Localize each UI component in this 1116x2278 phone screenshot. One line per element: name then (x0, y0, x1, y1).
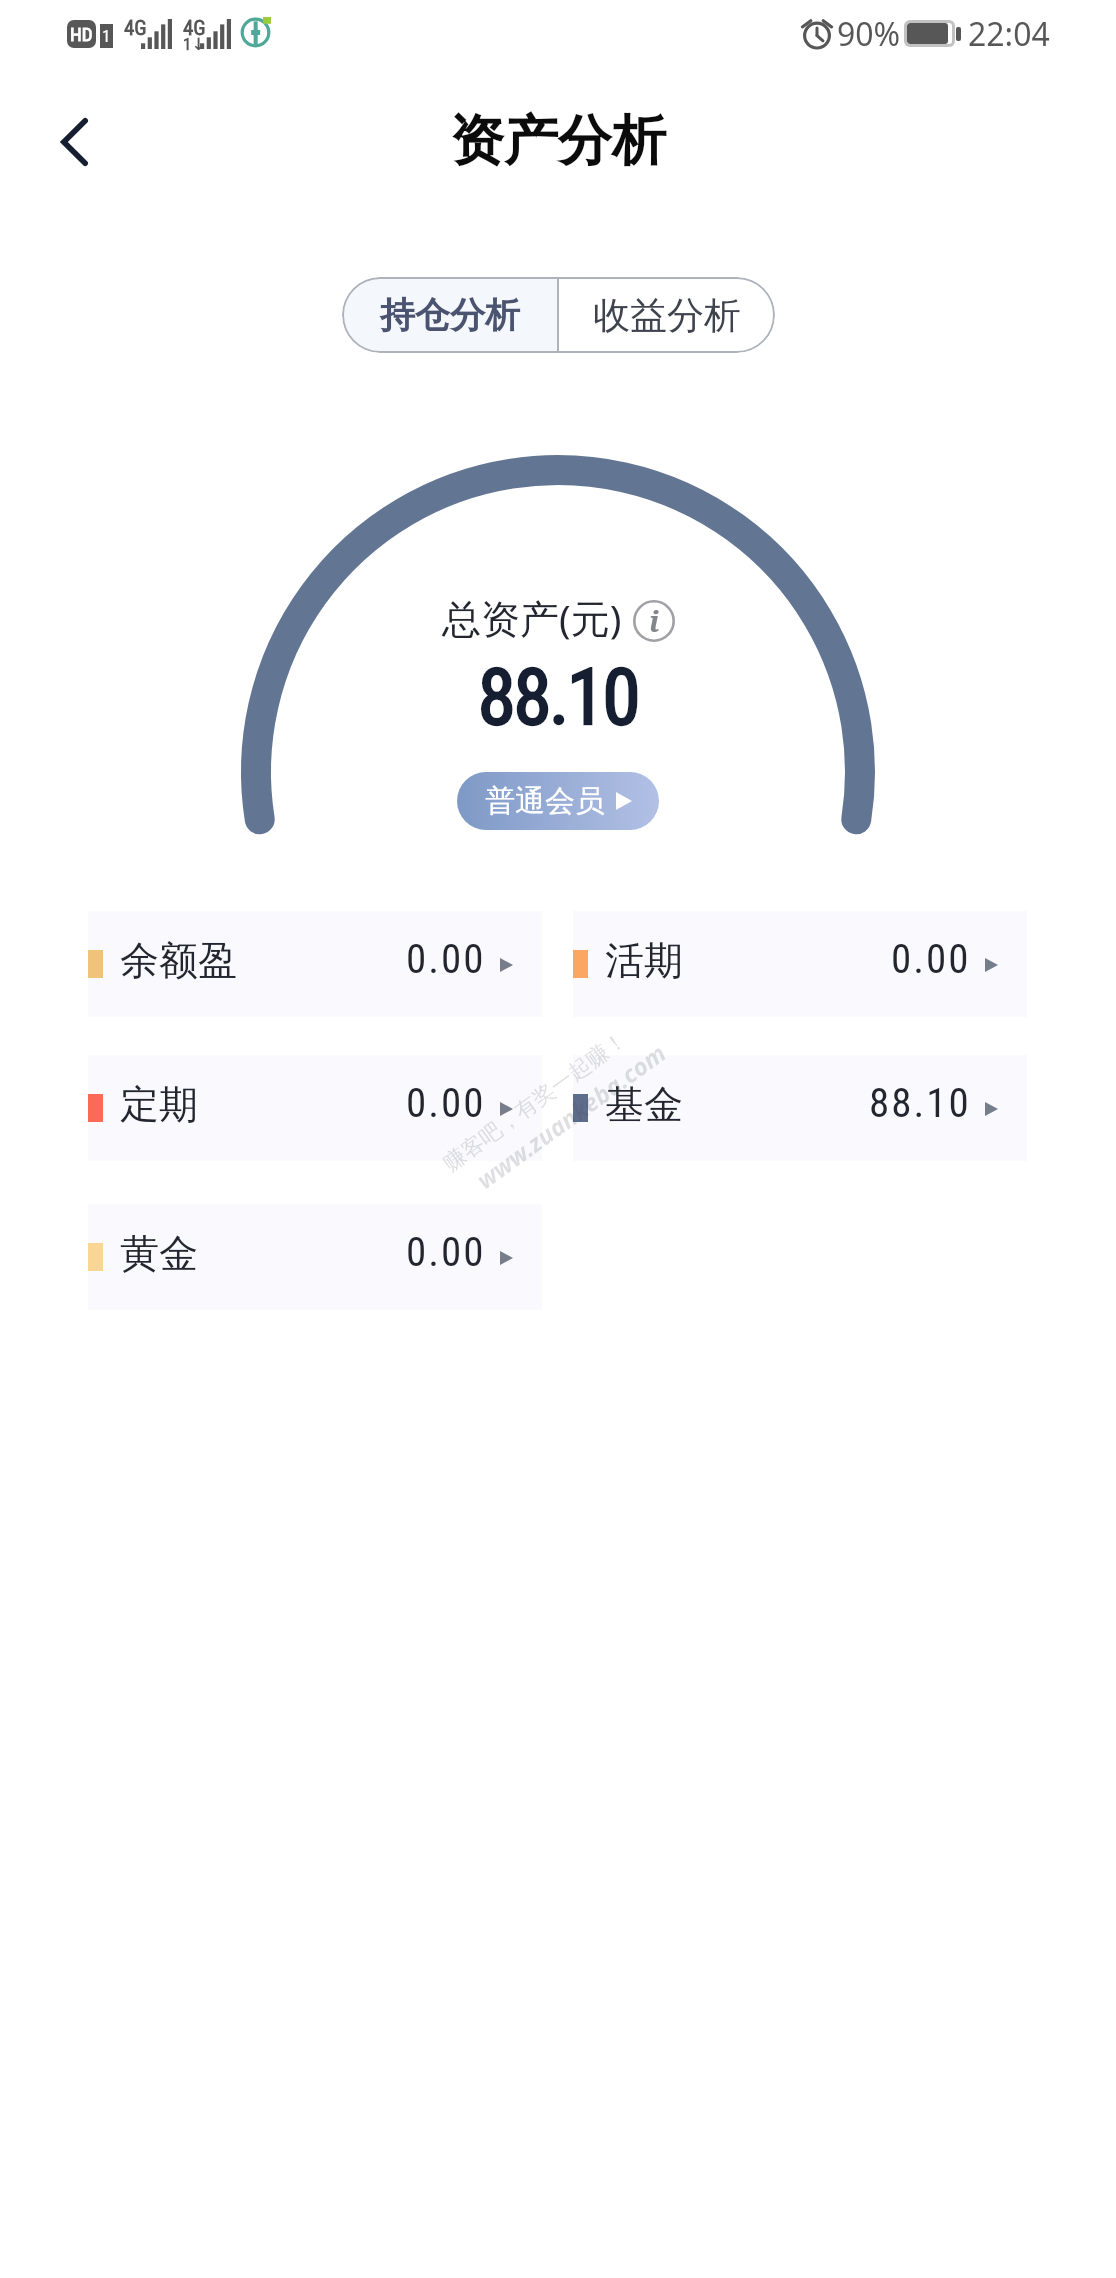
button[interactable]: 持仓分析 (342, 277, 557, 353)
button[interactable]: 活期 (573, 911, 1027, 1017)
staticText: 4G (183, 16, 206, 41)
staticText: 定期 (120, 1080, 198, 1129)
button[interactable]: 收益分析 (559, 277, 775, 353)
staticText: www.zuankeba.com (469, 1036, 672, 1196)
staticText: 88.10 (869, 1079, 971, 1127)
staticText: 资产分析 (0, 107, 1116, 175)
staticText: 1 (102, 26, 111, 46)
button[interactable]: 定期 (88, 1055, 542, 1161)
staticText: HD (70, 23, 93, 45)
staticText: 普通会员 (485, 782, 605, 820)
staticText: 黄金 (120, 1229, 198, 1278)
staticText: 基金 (605, 1080, 683, 1129)
staticText: 0.00 (406, 1079, 486, 1127)
staticText: 0.00 (891, 935, 971, 983)
staticText: 90% (837, 12, 901, 56)
staticText: 余额盈 (120, 936, 237, 985)
staticText: 0.00 (406, 935, 486, 983)
staticText: 赚客吧，有奖一起赚！ (438, 1026, 632, 1178)
staticText: 1↓ (183, 34, 206, 54)
staticText: 88.10 (0, 653, 1116, 743)
button[interactable]: 黄金 (88, 1204, 542, 1310)
staticText: 总资产(元) (442, 591, 622, 644)
staticText: i (649, 601, 660, 640)
button[interactable]: 余额盈 (88, 911, 542, 1017)
staticText: 22:04 (968, 12, 1050, 56)
button[interactable]: Back (28, 96, 120, 188)
staticText: 0.00 (406, 1228, 486, 1276)
button[interactable]: 基金 (573, 1055, 1027, 1161)
button[interactable]: 普通会员 (457, 772, 659, 830)
staticText: 4G (124, 16, 147, 41)
staticText: 持仓分析 (380, 293, 520, 337)
button[interactable]: Total asset info (633, 600, 675, 642)
staticText: 活期 (605, 936, 683, 985)
staticText: 收益分析 (593, 292, 741, 339)
